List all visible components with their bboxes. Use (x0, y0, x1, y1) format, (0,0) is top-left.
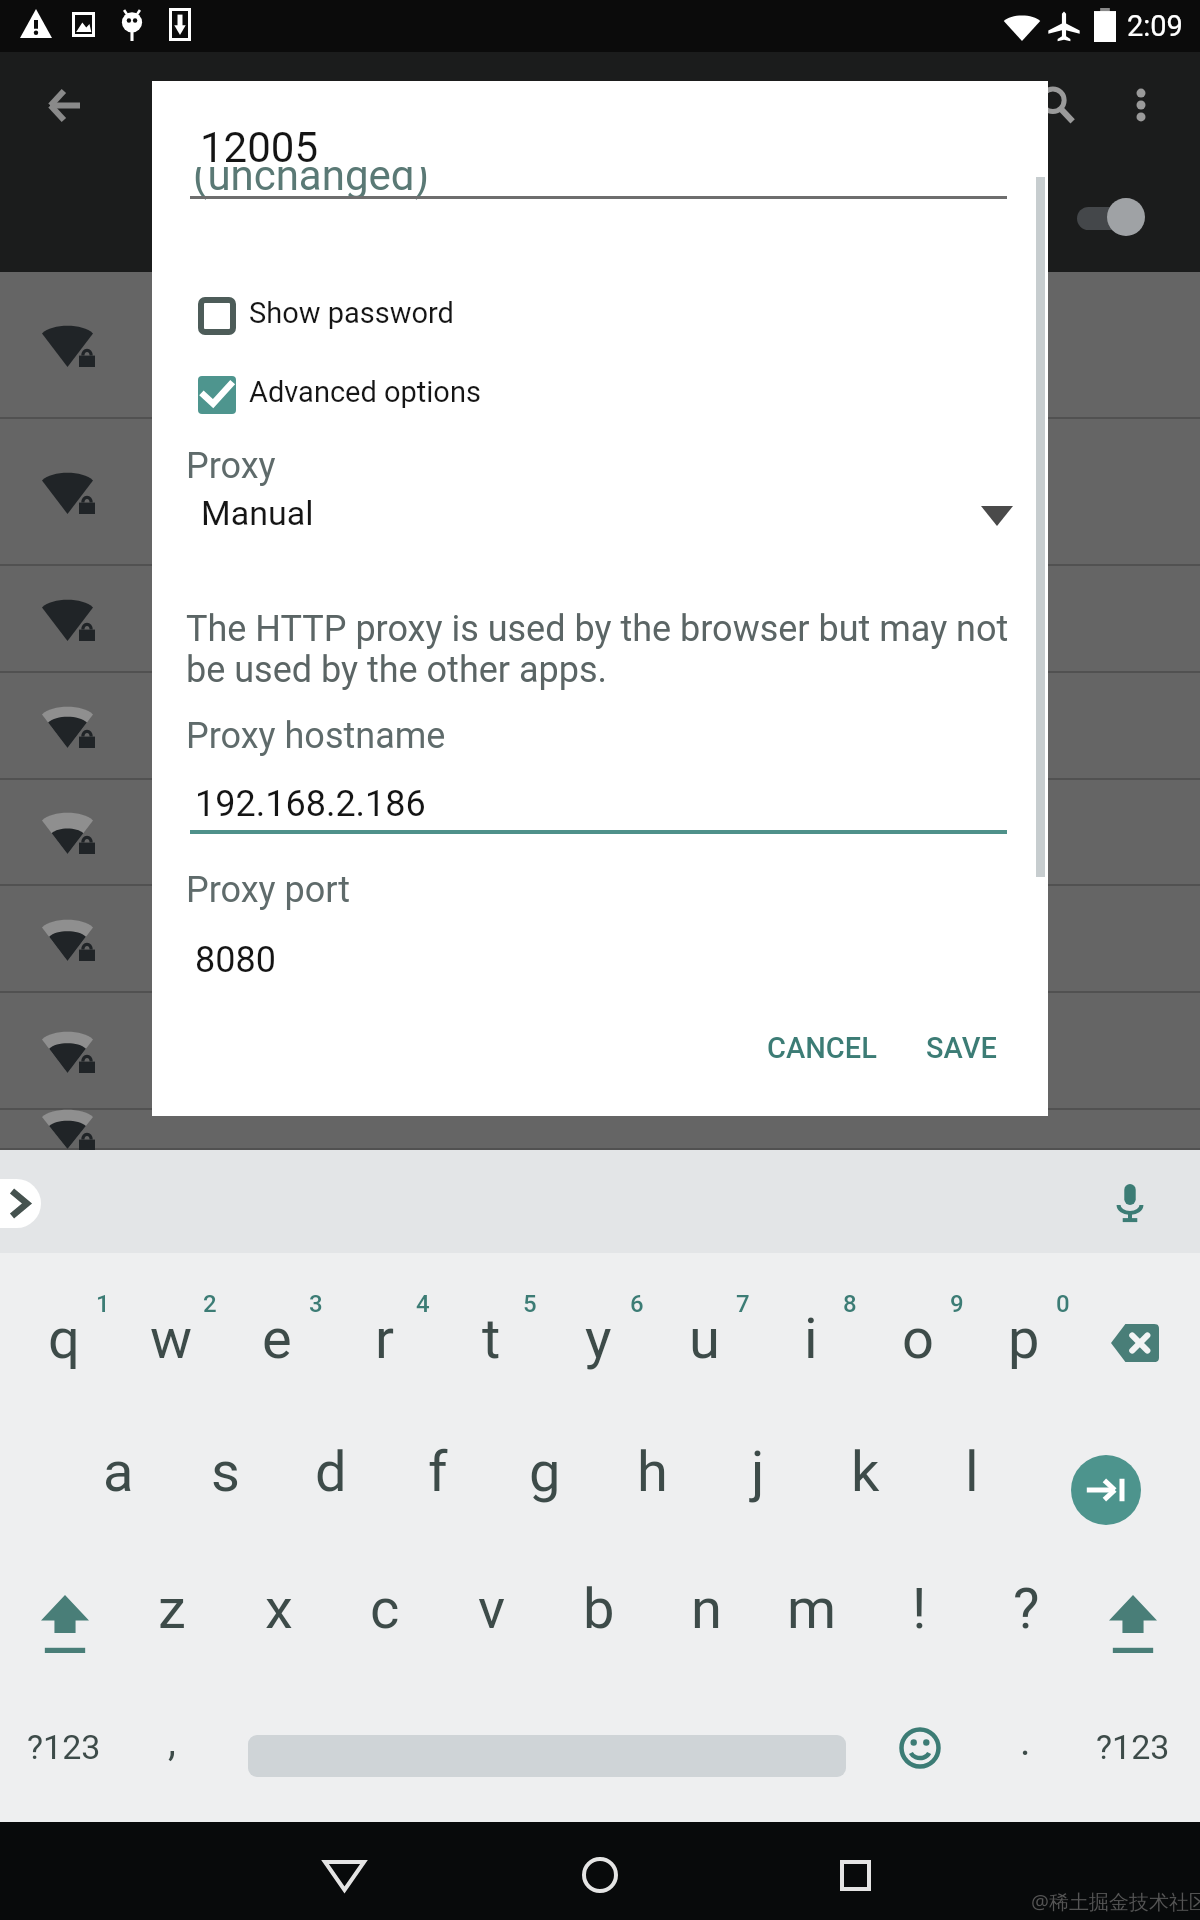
staticText: q (48, 1306, 80, 1372)
button[interactable]: v (439, 1542, 545, 1672)
staticText: w (150, 1306, 193, 1372)
button[interactable] (0, 886, 1200, 993)
button[interactable]: n (653, 1542, 759, 1672)
button[interactable]: Wi-Fi toggle (1060, 180, 1170, 244)
button[interactable]: z (119, 1542, 225, 1672)
staticText: v (478, 1576, 506, 1642)
button[interactable]: t (438, 1272, 544, 1402)
button[interactable]: e (224, 1272, 330, 1402)
button[interactable]: Shift (29, 1583, 101, 1669)
staticText: ! (912, 1576, 927, 1642)
button[interactable] (152, 489, 1048, 575)
button[interactable]: Recent apps (815, 1835, 895, 1915)
button[interactable]: u (651, 1272, 757, 1402)
button[interactable]: Emoji (884, 1712, 956, 1784)
button[interactable]: i (758, 1272, 864, 1402)
button[interactable]: 8 (830, 1256, 870, 1296)
staticText: Advanced options (249, 375, 481, 409)
button[interactable]: Search (1008, 56, 1106, 154)
staticText: t (482, 1306, 501, 1372)
button[interactable] (182, 279, 742, 353)
button[interactable]: More options (1092, 56, 1190, 154)
button[interactable]: m (759, 1542, 865, 1672)
button[interactable] (0, 780, 1200, 886)
button[interactable]: Shift (1097, 1583, 1169, 1669)
button[interactable]: 9 (937, 1256, 977, 1296)
staticText: 12005 (200, 123, 319, 172)
button[interactable]: ? (973, 1542, 1079, 1672)
button[interactable]: 6 (617, 1256, 657, 1296)
button[interactable] (0, 419, 1200, 566)
button[interactable]: Expand suggestions (0, 1179, 41, 1228)
button[interactable]: 3 (296, 1256, 336, 1296)
button[interactable]: a (65, 1405, 171, 1535)
button[interactable]: d (278, 1405, 384, 1535)
staticText: d (315, 1439, 347, 1505)
button[interactable]: ! (866, 1542, 972, 1672)
staticText: k (851, 1439, 880, 1505)
button[interactable]: ?123 (1073, 1693, 1193, 1797)
button[interactable]: 0 (1043, 1256, 1083, 1296)
button[interactable] (0, 993, 1200, 1110)
button[interactable]: w (118, 1272, 224, 1402)
button[interactable]: ?123 (4, 1693, 124, 1797)
staticText: a (103, 1439, 134, 1505)
button[interactable]: r (331, 1272, 437, 1402)
button[interactable] (182, 358, 742, 432)
button[interactable] (0, 1110, 1200, 1150)
button[interactable] (904, 1041, 1014, 1117)
staticText: m (787, 1576, 837, 1642)
button[interactable]: h (599, 1405, 705, 1535)
button[interactable]: o (865, 1272, 971, 1402)
button[interactable] (0, 566, 1200, 673)
staticText: 4 (416, 1290, 430, 1318)
button[interactable]: x (226, 1542, 332, 1672)
staticText: Show password (249, 296, 454, 330)
staticText: Manual (201, 493, 314, 533)
button[interactable]: k (812, 1405, 918, 1535)
button[interactable]: 4 (403, 1256, 443, 1296)
staticText: p (1008, 1306, 1040, 1372)
staticText: 192.168.2.186 (195, 783, 426, 825)
staticText: . (1020, 1718, 1031, 1765)
button[interactable]: g (492, 1405, 598, 1535)
button[interactable]: 2 (190, 1256, 230, 1296)
staticText: 8 (843, 1290, 857, 1318)
button[interactable]: j (705, 1405, 811, 1535)
button[interactable]: c (332, 1542, 438, 1672)
button[interactable]: , (132, 1684, 212, 1788)
button[interactable]: Back (304, 1835, 384, 1915)
button[interactable]: 5 (510, 1256, 550, 1296)
staticText: y (585, 1306, 612, 1372)
button[interactable] (0, 673, 1200, 780)
button[interactable]: y (545, 1272, 651, 1402)
button[interactable]: Navigate up (15, 56, 113, 154)
button[interactable]: 1 (83, 1256, 123, 1296)
button[interactable]: Voice input (1100, 1173, 1160, 1233)
staticText: l (965, 1439, 979, 1505)
staticText: g (529, 1439, 561, 1505)
button[interactable]: Enter (1071, 1455, 1141, 1525)
staticText: 8080 (195, 939, 276, 981)
staticText: r (375, 1306, 394, 1372)
staticText: (unchanged) (193, 151, 430, 200)
button[interactable] (742, 1041, 882, 1117)
button[interactable]: f (385, 1405, 491, 1535)
button[interactable]: q (11, 1272, 117, 1402)
staticText: j (751, 1439, 765, 1505)
button[interactable] (0, 272, 1200, 419)
button[interactable]: Home (560, 1835, 640, 1915)
staticText: h (637, 1439, 668, 1505)
staticText: 3 (309, 1290, 323, 1318)
staticText: z (158, 1576, 186, 1642)
button[interactable]: 7 (723, 1256, 763, 1296)
staticText: CANCEL (767, 1031, 877, 1065)
button[interactable]: . (985, 1684, 1065, 1788)
button[interactable]: l (919, 1405, 1025, 1535)
staticText: u (689, 1306, 720, 1372)
button[interactable]: b (546, 1542, 652, 1672)
button[interactable]: Delete (1111, 1324, 1159, 1362)
button[interactable]: p (971, 1272, 1077, 1402)
button[interactable]: s (172, 1405, 278, 1535)
